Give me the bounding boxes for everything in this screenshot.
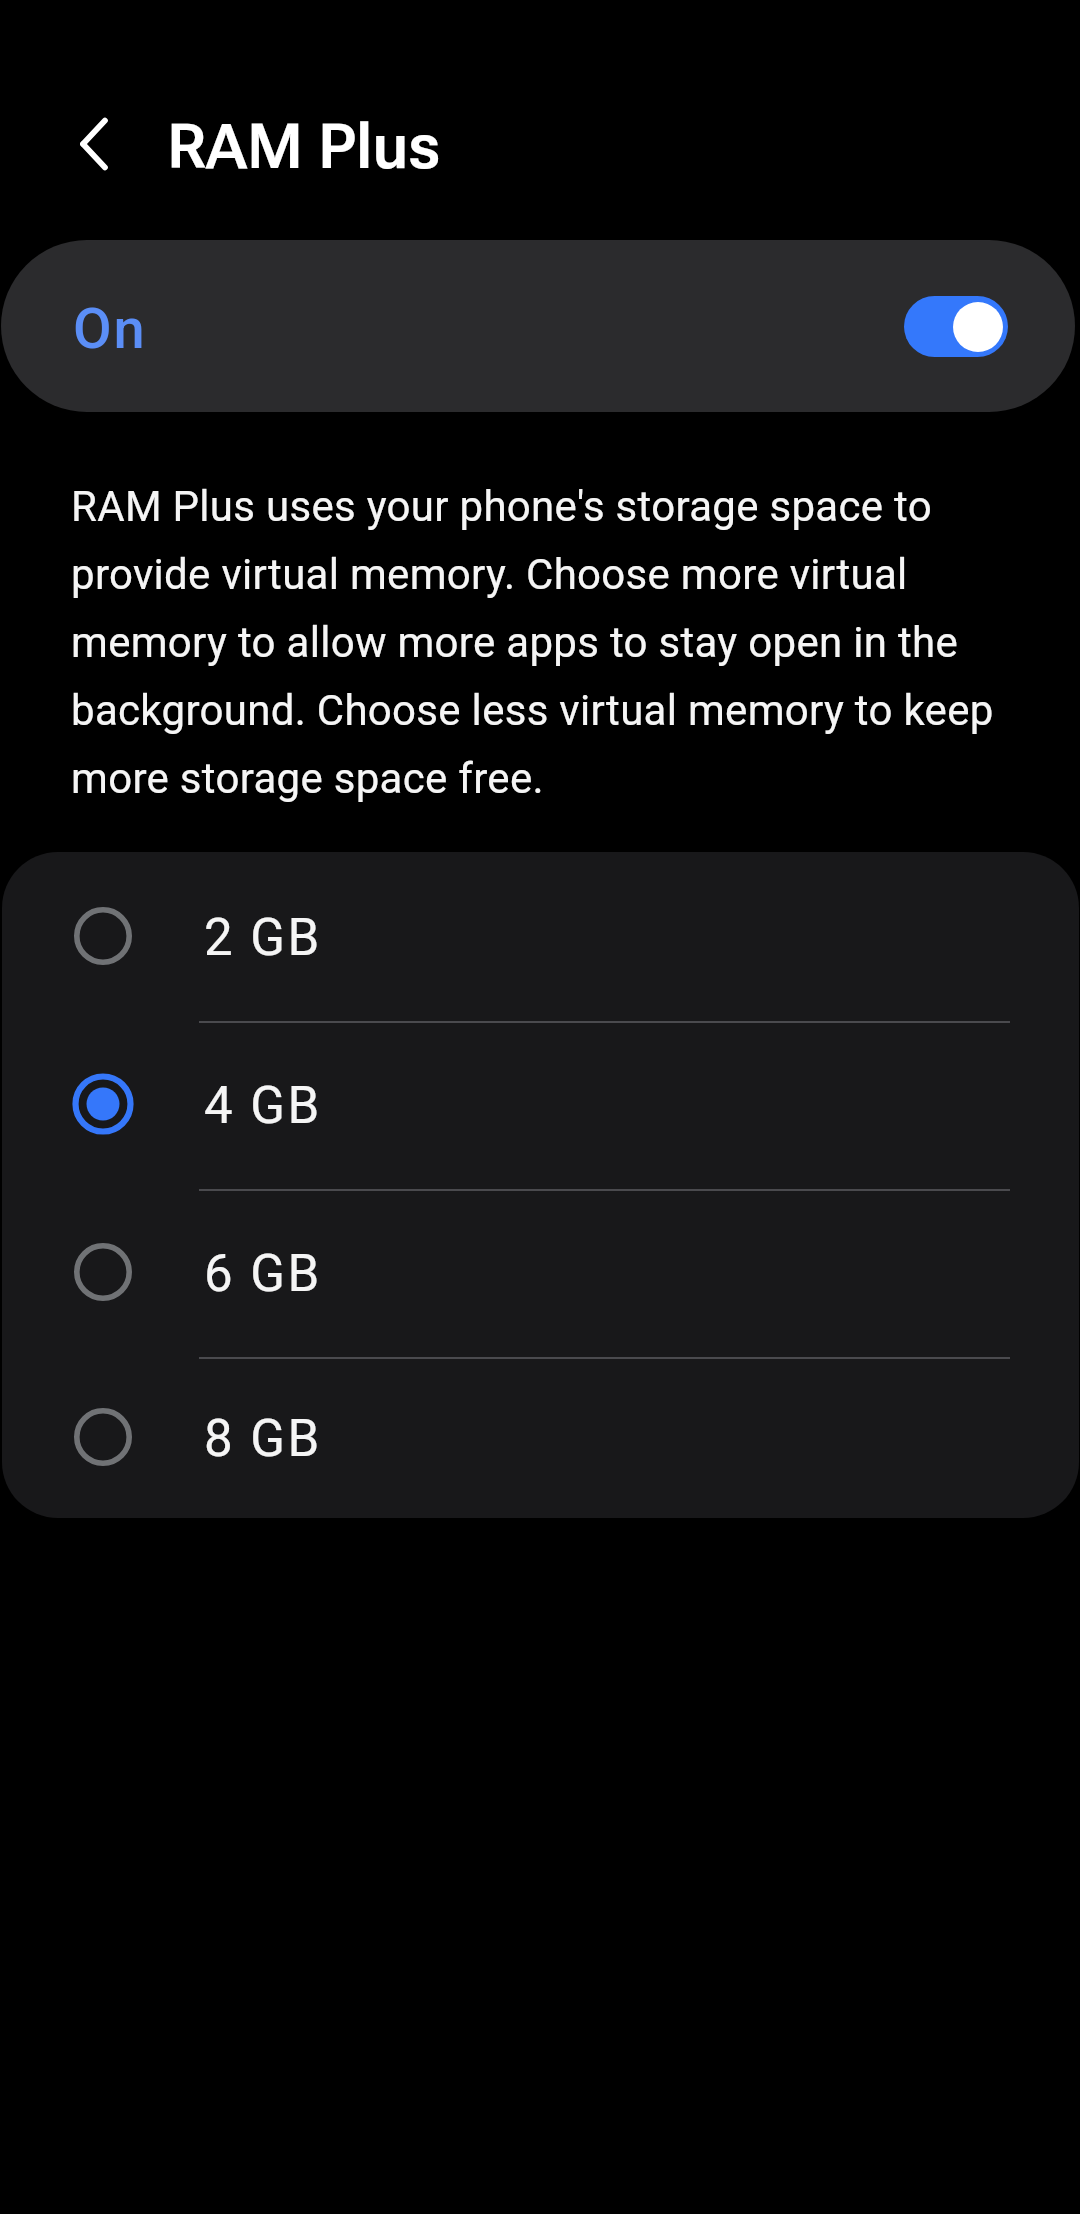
staticText: RAM Plus bbox=[167, 110, 441, 183]
staticText: 8 GB bbox=[204, 1409, 322, 1469]
button[interactable]: 8 GB bbox=[2, 1356, 1079, 1518]
button[interactable]: 6 GB bbox=[2, 1188, 1079, 1356]
staticText: RAM Plus uses your phone's storage space… bbox=[71, 482, 1013, 803]
staticText: 2 GB bbox=[204, 908, 322, 968]
staticText: 4 GB bbox=[204, 1076, 322, 1136]
button[interactable]: On bbox=[1, 240, 1075, 412]
staticText: 6 GB bbox=[204, 1244, 322, 1304]
button[interactable]: 4 GB bbox=[2, 1020, 1079, 1188]
button[interactable]: Navigate up bbox=[48, 98, 140, 190]
staticText: On bbox=[73, 296, 147, 362]
button[interactable]: 2 GB bbox=[2, 852, 1079, 1020]
button[interactable]: RAM Plus, on bbox=[904, 296, 1008, 357]
